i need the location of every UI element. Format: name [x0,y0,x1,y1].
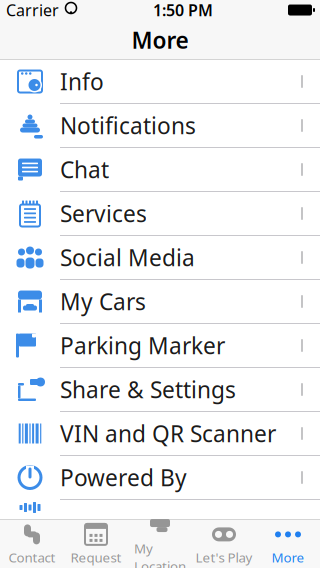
button[interactable]: My Location [128,519,192,568]
button[interactable]: More [256,519,320,568]
staticText: VIN and QR Scanner [60,418,276,448]
button[interactable]: Chat [0,148,320,192]
button[interactable]: Services [0,192,320,236]
staticText: My Location [134,539,186,568]
button[interactable]: Request [64,519,128,568]
button[interactable]: Info [0,60,320,104]
staticText: 1:50 PM [153,0,213,21]
button[interactable]: VIN and QR Scanner [0,412,320,456]
button[interactable] [0,500,320,515]
staticText: Services [60,198,147,228]
button[interactable]: Contact [0,519,64,568]
button[interactable]: Powered By [0,456,320,500]
staticText: Info [60,66,104,96]
staticText: Contact [8,548,55,566]
staticText: My Cars [60,286,146,316]
button[interactable]: Let's Play [192,519,256,568]
button[interactable]: My Cars [0,280,320,324]
staticText: Let's Play [195,548,252,566]
staticText: Social Media [60,242,195,272]
button[interactable]: Parking Marker [0,324,320,368]
staticText: Chat [60,154,109,184]
staticText: Notifications [60,110,196,140]
button[interactable]: Social Media [0,236,320,280]
button[interactable]: Share & Settings [0,368,320,412]
button[interactable]: Notifications [0,104,320,148]
staticText: More [131,25,188,55]
staticText: Parking Marker [60,330,225,360]
staticText: More [271,548,304,566]
staticText: Request [70,548,121,566]
staticText: Carrier [6,0,59,21]
staticText: Share & Settings [60,374,236,404]
staticText: Powered By [60,462,187,492]
